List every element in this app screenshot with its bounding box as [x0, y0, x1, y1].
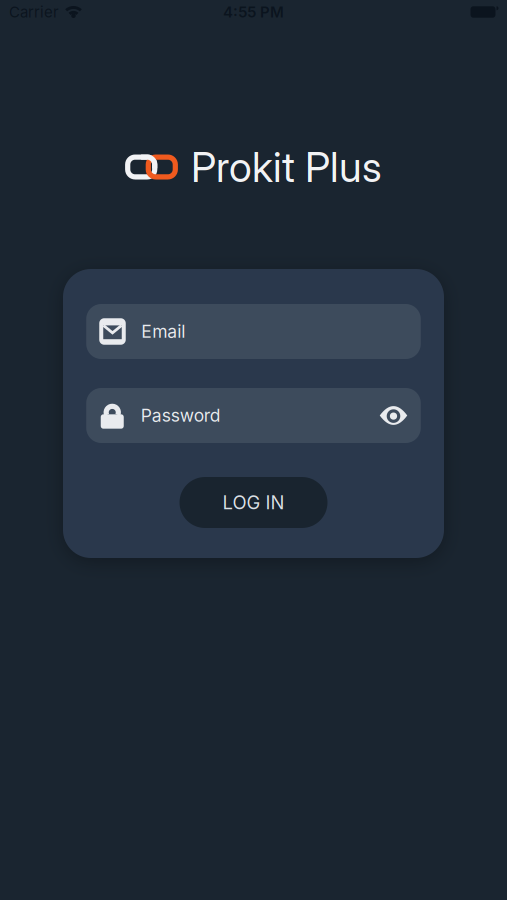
staticText: Carrier — [9, 3, 59, 21]
button[interactable]: Show password — [380, 406, 421, 425]
button[interactable]: Email — [86, 304, 421, 359]
staticText: Prokit Plus — [191, 142, 382, 192]
staticText: 4:55 PM — [223, 3, 284, 21]
staticText: Email — [141, 321, 185, 342]
button[interactable]: LOG IN — [179, 477, 327, 528]
staticText: LOG IN — [222, 491, 284, 514]
button[interactable]: Password — [86, 388, 421, 443]
staticText: Password — [141, 405, 221, 426]
